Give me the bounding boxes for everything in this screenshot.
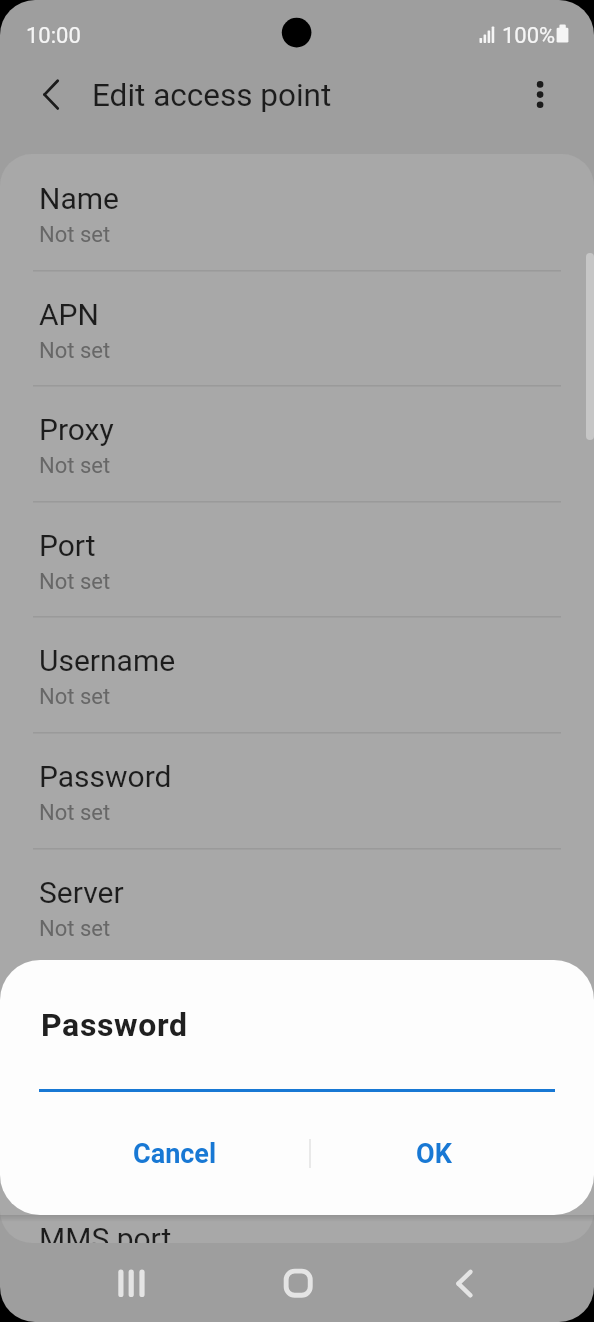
staticText: APN bbox=[39, 297, 99, 332]
staticText: Username bbox=[39, 643, 176, 678]
staticText: Not set bbox=[39, 569, 111, 595]
button[interactable]: Username bbox=[0, 616, 594, 732]
button[interactable]: Cancel bbox=[95, 1123, 254, 1185]
staticText: Proxy bbox=[39, 412, 114, 447]
staticText: Name bbox=[39, 181, 119, 216]
staticText: MMSC bbox=[39, 990, 129, 1025]
staticText: MMS port bbox=[39, 1221, 172, 1243]
staticText: Server bbox=[39, 875, 124, 910]
button[interactable]: Home bbox=[263, 1249, 331, 1317]
staticText: Not set bbox=[39, 222, 111, 248]
button[interactable]: OK bbox=[354, 1123, 513, 1185]
staticText: Not set bbox=[39, 453, 111, 479]
staticText: Cancel bbox=[133, 1138, 217, 1170]
staticText: Password bbox=[39, 759, 172, 794]
button[interactable]: Navigate up bbox=[22, 66, 79, 123]
button[interactable]: Server bbox=[0, 848, 594, 964]
staticText: Not set bbox=[39, 338, 111, 364]
staticText: Not set bbox=[39, 916, 111, 942]
staticText: Not set bbox=[39, 800, 111, 826]
button[interactable]: Port bbox=[0, 501, 594, 617]
staticText: Edit access point bbox=[92, 77, 332, 114]
button[interactable]: Name bbox=[0, 154, 594, 270]
staticText: Not set bbox=[39, 1031, 111, 1057]
staticText: Not set bbox=[39, 684, 111, 710]
button[interactable]: MMS proxy bbox=[0, 1079, 594, 1195]
button[interactable]: MMSC bbox=[0, 963, 594, 1079]
button[interactable]: Password bbox=[0, 732, 594, 848]
button[interactable]: MMS port bbox=[0, 1194, 594, 1243]
staticText: Password bbox=[41, 1006, 188, 1044]
button[interactable]: APN bbox=[0, 270, 594, 386]
staticText: 100% bbox=[502, 23, 556, 49]
button[interactable]: Back bbox=[430, 1249, 498, 1317]
button[interactable]: More options bbox=[512, 66, 569, 123]
staticText: 10:00 bbox=[26, 23, 81, 49]
staticText: Port bbox=[39, 528, 96, 563]
staticText: OK bbox=[416, 1138, 452, 1170]
button[interactable]: Proxy bbox=[0, 385, 594, 501]
button[interactable]: Recents bbox=[97, 1249, 165, 1317]
